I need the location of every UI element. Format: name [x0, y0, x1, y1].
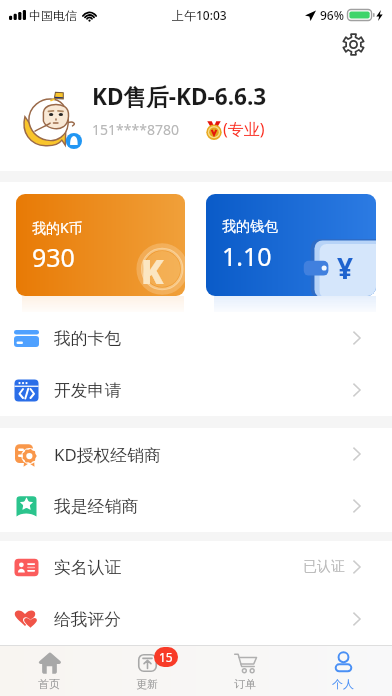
staticText: 个人: [332, 677, 354, 691]
staticText: 订单: [234, 677, 256, 691]
button[interactable]: 订单: [196, 646, 294, 696]
button[interactable]: 我是经销商: [0, 480, 392, 532]
staticText: 930: [32, 240, 75, 274]
staticText: 我的钱包: [222, 218, 278, 236]
button[interactable]: ¥: [206, 194, 376, 296]
staticText: 我的卡包: [54, 328, 122, 349]
button[interactable]: 给我评分: [0, 593, 392, 645]
staticText: 96%: [320, 7, 344, 23]
staticText: 1.10: [222, 239, 272, 273]
button[interactable]: 开发申请: [0, 364, 392, 416]
staticText: 上午10:03: [172, 7, 227, 23]
staticText: 我的K币: [32, 218, 83, 237]
staticText: 首页: [38, 677, 60, 691]
staticText: 151****8780: [92, 120, 179, 139]
staticText: 15: [159, 649, 173, 665]
staticText: 实名认证: [54, 557, 122, 578]
button[interactable]: Settings: [331, 22, 375, 66]
button[interactable]: KD授权经销商: [0, 428, 392, 480]
button[interactable]: 15: [98, 646, 196, 696]
staticText: KD授权经销商: [54, 443, 161, 466]
staticText: 已认证: [303, 558, 345, 576]
button[interactable]: 我的卡包: [0, 312, 392, 364]
staticText: K: [141, 249, 164, 294]
staticText: 我是经销商: [54, 496, 138, 517]
staticText: KD售后-KD-6.6.3: [92, 81, 267, 112]
button[interactable]: K: [16, 194, 185, 296]
staticText: 更新: [136, 677, 158, 691]
button[interactable]: 首页: [0, 646, 98, 696]
staticText: ¥: [337, 249, 354, 287]
staticText: (专业): [223, 118, 265, 140]
staticText: 给我评分: [54, 609, 122, 630]
staticText: 开发申请: [54, 380, 122, 401]
button[interactable]: 实名认证: [0, 541, 392, 593]
button[interactable]: 个人: [294, 646, 392, 696]
staticText: 中国电信: [29, 8, 77, 23]
